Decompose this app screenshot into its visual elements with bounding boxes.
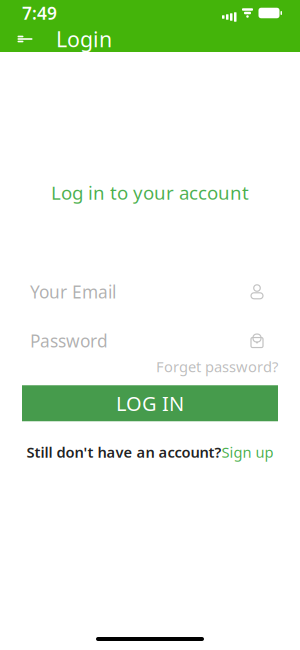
staticText: Log in to your account xyxy=(51,180,249,205)
staticText: Still don't have an account? xyxy=(26,442,221,462)
staticText: LOG IN xyxy=(116,390,184,417)
button[interactable]: Forget password? xyxy=(156,357,278,376)
staticText: Your Email xyxy=(30,280,116,303)
staticText: 7:49 xyxy=(22,1,57,24)
button[interactable]: Sign up xyxy=(221,442,273,462)
button[interactable]: LOG IN xyxy=(22,385,278,421)
staticText: Login xyxy=(56,25,112,53)
staticText: Sign up xyxy=(221,442,273,462)
staticText: Password xyxy=(30,329,108,352)
button[interactable]: Back xyxy=(8,26,42,52)
staticText: Forget password? xyxy=(156,357,278,376)
